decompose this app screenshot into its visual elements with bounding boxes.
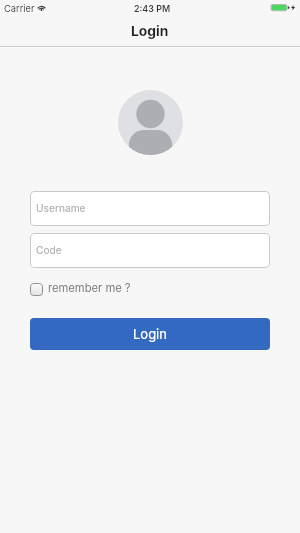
staticText: Code (36, 244, 62, 256)
staticText: Carrier (4, 3, 35, 14)
staticText: Login (131, 23, 169, 40)
staticText: Login (133, 326, 167, 342)
staticText: remember me ? (48, 281, 131, 295)
staticText: Username (36, 202, 86, 214)
button[interactable]: Username (30, 191, 270, 226)
staticText: 2:43 PM (134, 3, 171, 14)
button[interactable]: remember me ? (30, 282, 131, 296)
button[interactable]: Code (30, 233, 270, 268)
button[interactable]: Login (30, 318, 270, 350)
